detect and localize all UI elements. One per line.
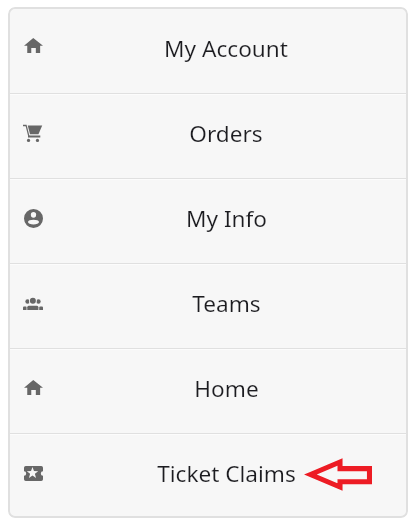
- button[interactable]: Orders: [8, 93, 408, 178]
- staticText: Teams: [192, 288, 261, 319]
- staticText: Ticket Claims: [157, 458, 296, 489]
- button[interactable]: My Account: [8, 7, 408, 93]
- staticText: Home: [194, 373, 259, 404]
- other: Pointer: [307, 459, 372, 490]
- staticText: My Info: [186, 203, 267, 234]
- staticText: Orders: [189, 118, 263, 149]
- staticText: My Account: [164, 33, 288, 64]
- button[interactable]: My Info: [8, 178, 408, 263]
- button[interactable]: Home: [8, 348, 408, 433]
- button[interactable]: Teams: [8, 263, 408, 348]
- button[interactable]: Ticket Claims: [8, 433, 408, 518]
